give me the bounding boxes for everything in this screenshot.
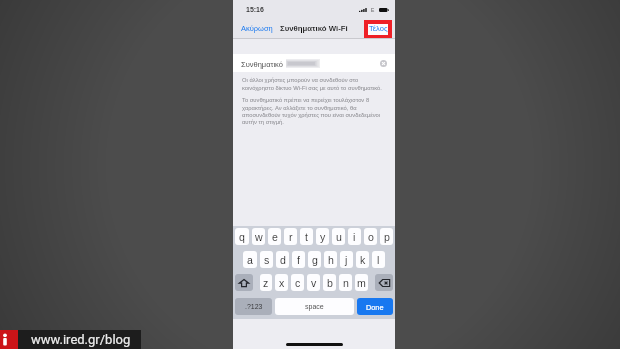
button[interactable]: i [348, 228, 361, 245]
staticText: b [327, 277, 333, 289]
staticText: p [384, 231, 390, 243]
button[interactable]: m [355, 274, 368, 291]
staticText: a [247, 254, 253, 266]
staticText: r [289, 231, 293, 243]
button[interactable]: Done [357, 298, 393, 315]
button[interactable]: space [275, 298, 354, 315]
button[interactable]: e [268, 228, 281, 245]
button[interactable]: b [323, 274, 336, 291]
staticText: c [295, 277, 301, 289]
staticText: e [272, 231, 278, 243]
button[interactable]: .?123 [235, 298, 272, 315]
staticText: i [353, 231, 356, 243]
staticText: space [305, 303, 324, 311]
staticText: w [255, 231, 263, 243]
staticText: n [343, 277, 349, 289]
staticText: h [328, 254, 334, 266]
button[interactable]: z [260, 274, 272, 291]
button[interactable]: o [364, 228, 377, 245]
button[interactable]: t [300, 228, 313, 245]
staticText: o [368, 231, 374, 243]
button[interactable]: r [284, 228, 297, 245]
button[interactable]: Backspace [375, 274, 393, 291]
button[interactable]: Ακύρωση [233, 24, 277, 36]
button[interactable]: Shift [235, 274, 253, 291]
staticText: u [336, 231, 342, 243]
staticText: t [305, 231, 308, 243]
button[interactable]: h [324, 251, 337, 268]
button[interactable]: c [291, 274, 304, 291]
staticText: Done [366, 303, 384, 311]
staticText: j [345, 254, 348, 266]
button[interactable]: x [275, 274, 288, 291]
staticText: .?123 [245, 303, 263, 311]
staticText: l [377, 254, 380, 266]
button[interactable]: v [307, 274, 320, 291]
button[interactable]: Τέλος [364, 20, 392, 38]
staticText: E [371, 7, 375, 13]
button[interactable]: f [292, 251, 305, 268]
button[interactable]: g [308, 251, 321, 268]
button[interactable]: s [260, 251, 273, 268]
staticText: Ακύρωση [241, 24, 273, 32]
staticText: q [239, 231, 245, 243]
staticText: v [311, 277, 317, 289]
staticText: z [263, 277, 269, 289]
button[interactable]: w [252, 228, 265, 245]
staticText: www.ired.gr/blog [31, 332, 131, 347]
button[interactable]: p [380, 228, 393, 245]
staticText: s [264, 254, 270, 266]
button[interactable]: u [332, 228, 345, 245]
staticText: k [360, 254, 366, 266]
staticText: f [297, 254, 300, 266]
staticText: Συνθηματικό Wi-Fi [280, 24, 348, 33]
staticText: x [279, 277, 285, 289]
button[interactable]: d [276, 251, 289, 268]
staticText: Οι άλλοι χρήστες μπορούν να συνδεθούν στ… [242, 77, 390, 91]
button[interactable]: n [339, 274, 352, 291]
button[interactable]: q [235, 228, 249, 245]
staticText: Το συνθηματικό πρέπει να περιέχει τουλάχ… [242, 97, 390, 125]
button[interactable]: y [316, 228, 329, 245]
staticText: Τέλος [369, 24, 388, 32]
staticText: g [312, 254, 318, 266]
button[interactable]: a [243, 251, 257, 268]
button[interactable]: j [340, 251, 353, 268]
staticText: d [280, 254, 286, 266]
staticText: 15:16 [246, 6, 264, 14]
staticText: Συνθηματικό [241, 60, 283, 68]
staticText: y [320, 231, 326, 243]
button[interactable]: Clear text [380, 60, 387, 67]
button[interactable]: l [372, 251, 385, 268]
button[interactable]: k [356, 251, 369, 268]
staticText: m [357, 277, 366, 289]
